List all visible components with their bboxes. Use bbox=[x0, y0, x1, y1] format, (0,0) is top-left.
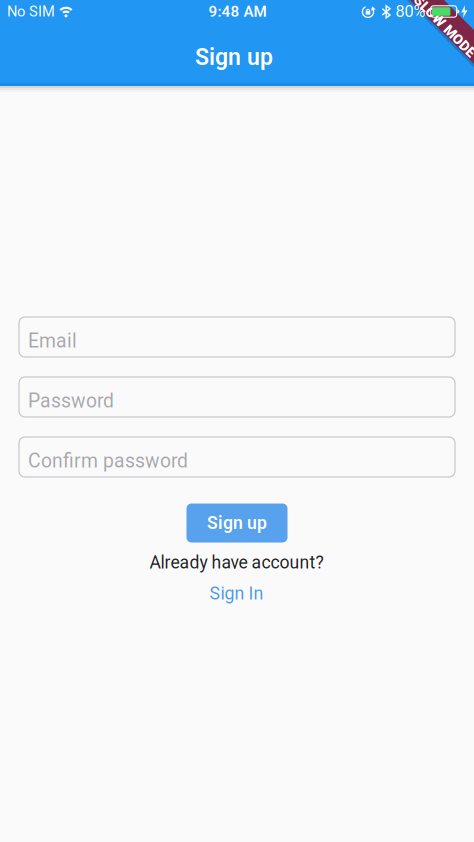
staticText: 80% bbox=[395, 2, 425, 21]
staticText: No SIM bbox=[7, 3, 55, 20]
button[interactable]: Sign up bbox=[186, 503, 287, 542]
staticText: SLOW MODE bbox=[408, 21, 474, 38]
staticText: Sign up bbox=[207, 513, 267, 533]
staticText: Sign up bbox=[195, 43, 273, 70]
button[interactable]: Password bbox=[19, 377, 455, 417]
staticText: Email bbox=[28, 330, 77, 352]
button[interactable]: Sign In bbox=[209, 583, 263, 604]
staticText: 9:48 AM bbox=[208, 3, 266, 20]
button[interactable]: Confirm password bbox=[19, 437, 455, 477]
staticText: Password bbox=[28, 390, 114, 412]
staticText: Sign In bbox=[209, 583, 263, 604]
staticText: Already have account? bbox=[149, 552, 323, 573]
staticText: Confirm password bbox=[28, 450, 188, 472]
button[interactable]: Email bbox=[19, 317, 455, 357]
